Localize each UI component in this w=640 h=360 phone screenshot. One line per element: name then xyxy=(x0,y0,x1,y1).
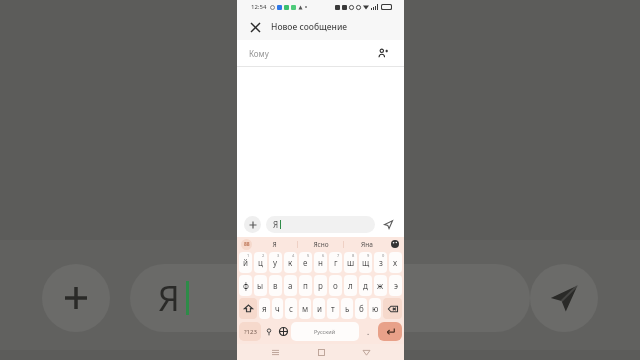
staticText: д xyxy=(363,280,368,291)
button[interactable]: о xyxy=(329,275,342,296)
button[interactable]: т xyxy=(327,298,339,319)
button[interactable]: з xyxy=(374,252,387,273)
staticText: я xyxy=(262,303,267,314)
staticText: к xyxy=(288,257,293,268)
staticText: 2 xyxy=(262,253,265,258)
staticText: ч xyxy=(275,303,280,314)
button[interactable]: Clipboard xyxy=(241,239,252,250)
staticText: н xyxy=(318,257,323,268)
button[interactable]: ь xyxy=(341,298,353,319)
staticText: Ясно xyxy=(313,240,329,249)
button[interactable]: Close xyxy=(246,18,264,36)
button[interactable]: Add attachment xyxy=(42,264,110,332)
staticText: п xyxy=(303,280,308,291)
staticText: р xyxy=(318,280,323,291)
staticText: ы xyxy=(257,280,264,291)
staticText: Кому xyxy=(249,48,269,59)
button[interactable]: Recents xyxy=(267,344,283,360)
button[interactable]: Send xyxy=(530,264,598,332)
staticText: 9 xyxy=(367,253,370,258)
staticText: л xyxy=(348,280,353,291)
button[interactable]: Home xyxy=(313,344,329,360)
button[interactable]: Я xyxy=(130,264,530,332)
staticText: а xyxy=(288,280,293,291)
button[interactable]: Emoji and themes xyxy=(389,238,401,250)
staticText: 7 xyxy=(337,253,340,258)
staticText: т xyxy=(331,303,335,314)
staticText: э xyxy=(394,280,398,291)
button[interactable]: Back xyxy=(358,344,374,360)
staticText: ф xyxy=(243,280,249,291)
button[interactable]: а xyxy=(284,275,297,296)
button[interactable]: в xyxy=(269,275,282,296)
button[interactable]: ы xyxy=(254,275,267,296)
button[interactable]: п xyxy=(299,275,312,296)
staticText: 0 xyxy=(382,253,385,258)
staticText: й xyxy=(243,257,248,268)
button[interactable]: Ясно xyxy=(298,237,343,251)
staticText: Яна xyxy=(361,240,373,249)
staticText: ц xyxy=(258,257,263,268)
staticText: 5 xyxy=(307,253,310,258)
button[interactable]: Add attachment xyxy=(244,216,261,233)
staticText: ш xyxy=(347,257,355,268)
button[interactable]: м xyxy=(299,298,311,319)
staticText: ж xyxy=(377,280,384,291)
button[interactable]: с xyxy=(285,298,297,319)
button[interactable]: я xyxy=(259,298,270,319)
button[interactable]: ш xyxy=(344,252,357,273)
button[interactable]: Русский xyxy=(291,322,359,341)
button[interactable]: к xyxy=(284,252,297,273)
staticText: с xyxy=(289,303,293,314)
button[interactable]: г xyxy=(329,252,342,273)
button[interactable]: х xyxy=(389,252,402,273)
button[interactable]: Change language xyxy=(276,321,290,342)
button[interactable]: Я xyxy=(266,216,375,233)
button[interactable]: б xyxy=(355,298,367,319)
button[interactable]: Send xyxy=(380,216,397,233)
button[interactable]: ц xyxy=(254,252,267,273)
staticText: Русский xyxy=(314,328,336,335)
staticText: Я xyxy=(272,240,277,249)
button[interactable]: у xyxy=(269,252,282,273)
staticText: е xyxy=(303,257,308,268)
button[interactable]: й xyxy=(239,252,252,273)
button[interactable]: Яна xyxy=(344,237,389,251)
button[interactable]: . xyxy=(360,321,377,342)
staticText: 6 xyxy=(322,253,325,258)
button[interactable]: Shift xyxy=(239,298,257,319)
staticText: . xyxy=(367,326,370,337)
staticText: 4 xyxy=(292,253,295,258)
staticText: г xyxy=(334,257,338,268)
button[interactable]: Кому xyxy=(249,40,374,66)
button[interactable]: щ xyxy=(359,252,372,273)
button[interactable]: Add recipient xyxy=(374,44,392,62)
button[interactable]: Я xyxy=(252,237,297,251)
staticText: х xyxy=(393,257,398,268)
staticText: Я xyxy=(158,275,180,321)
staticText: 88 xyxy=(244,241,250,248)
button[interactable]: и xyxy=(313,298,325,319)
staticText: Я xyxy=(273,219,279,230)
button[interactable]: е xyxy=(299,252,312,273)
button[interactable]: л xyxy=(344,275,357,296)
button[interactable]: ч xyxy=(272,298,283,319)
button[interactable]: э xyxy=(389,275,402,296)
button[interactable]: р xyxy=(314,275,327,296)
staticText: б xyxy=(359,303,364,314)
staticText: о xyxy=(333,280,338,291)
button[interactable]: Enter xyxy=(378,322,402,341)
button[interactable]: ф xyxy=(239,275,252,296)
button[interactable]: н xyxy=(314,252,327,273)
button[interactable]: д xyxy=(359,275,372,296)
staticText: 8 xyxy=(352,253,355,258)
button[interactable]: ю xyxy=(369,298,381,319)
button[interactable]: ?123 xyxy=(239,322,261,341)
staticText: з xyxy=(379,257,383,268)
button[interactable]: Settings xyxy=(262,321,276,342)
button[interactable]: ж xyxy=(374,275,387,296)
button[interactable]: Backspace xyxy=(383,298,402,319)
staticText: ь xyxy=(345,303,350,314)
staticText: ю xyxy=(372,303,379,314)
staticText: ?123 xyxy=(244,328,257,336)
